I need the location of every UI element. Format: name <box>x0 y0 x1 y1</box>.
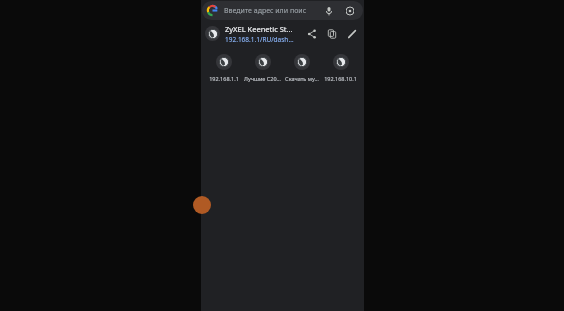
button[interactable]: Share <box>304 26 320 42</box>
button[interactable]: Скачать му… <box>282 52 321 84</box>
button[interactable]: Voice search <box>322 4 336 18</box>
button[interactable]: Лучшие C20… <box>243 52 282 84</box>
button[interactable]: Edit <box>344 26 360 42</box>
button[interactable]: 192.168.10.1 <box>321 52 360 84</box>
staticText: 192.168.10.1 <box>324 75 357 82</box>
staticText: 192.168.1.1/RU/dash… <box>225 35 294 44</box>
button[interactable]: 192.168.1.1 <box>205 52 243 84</box>
button[interactable]: Введите адрес или поис <box>202 1 363 20</box>
staticText: 192.168.1.1 <box>209 75 239 82</box>
staticText: Введите адрес или поис <box>224 6 322 16</box>
button[interactable]: Google Lens <box>343 4 357 18</box>
button[interactable]: ZyXEL Keenetic St… <box>201 21 364 46</box>
staticText: ZyXEL Keenetic St… <box>225 24 293 34</box>
button[interactable]: Copy <box>324 26 340 42</box>
staticText: Лучшие C20… <box>244 75 281 82</box>
staticText: Скачать му… <box>285 75 319 82</box>
